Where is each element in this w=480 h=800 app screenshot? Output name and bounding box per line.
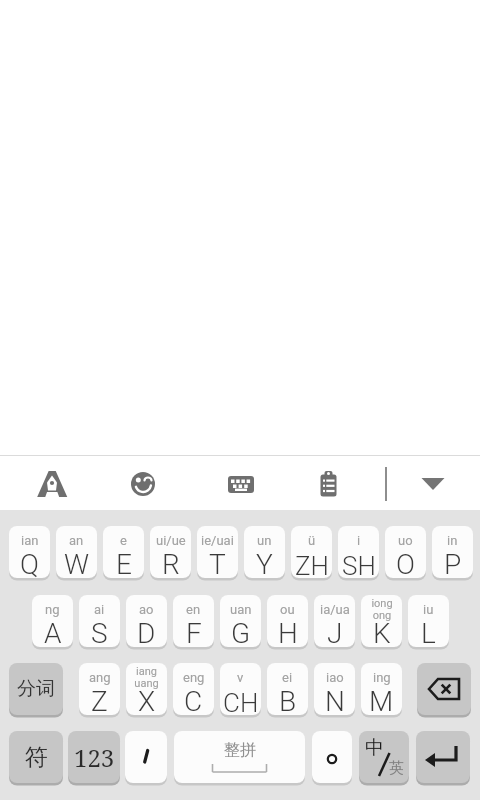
button[interactable]: ia/ua <box>314 595 355 647</box>
button[interactable]: A <box>30 462 74 506</box>
staticText: M <box>369 685 394 718</box>
button[interactable]: an <box>56 526 97 578</box>
staticText: T <box>209 548 226 581</box>
button[interactable]: ie/uai <box>197 526 238 578</box>
button[interactable] <box>411 462 455 506</box>
staticText: 中 <box>365 736 384 760</box>
staticText: G <box>231 617 251 650</box>
staticText: 分词 <box>17 677 55 701</box>
button[interactable] <box>121 462 165 506</box>
staticText: v <box>237 670 244 685</box>
button[interactable] <box>304 460 348 506</box>
staticText: ao <box>139 602 154 617</box>
button[interactable]: e <box>103 526 144 578</box>
button[interactable]: ai <box>79 595 120 647</box>
staticText: ian <box>21 533 39 548</box>
staticText: ia/ua <box>320 602 350 617</box>
staticText: X <box>138 685 156 718</box>
button[interactable]: ang <box>79 663 120 715</box>
button[interactable] <box>219 462 263 506</box>
staticText: eng <box>183 670 205 685</box>
staticText: J <box>327 617 343 650</box>
button[interactable] <box>312 731 352 783</box>
button[interactable]: uo <box>385 526 426 578</box>
staticText: ing <box>373 670 391 685</box>
staticText: W <box>64 548 90 581</box>
staticText: 符 <box>25 743 48 772</box>
button[interactable] <box>416 731 470 783</box>
staticText: 英 <box>389 759 404 778</box>
staticText: C <box>184 685 203 718</box>
staticText: uo <box>398 533 413 548</box>
button[interactable]: ian <box>9 526 50 578</box>
staticText: N <box>325 685 345 718</box>
staticText: H <box>278 617 298 650</box>
staticText: 整拼 <box>224 740 256 760</box>
button[interactable]: ü <box>291 526 332 578</box>
staticText: Y <box>256 548 273 581</box>
staticText: Q <box>20 548 39 581</box>
staticText: ZH <box>295 551 329 581</box>
button[interactable]: un <box>244 526 285 578</box>
staticText: K <box>373 617 391 650</box>
button[interactable]: 符 <box>9 731 63 783</box>
button[interactable]: eng <box>173 663 214 715</box>
staticText: R <box>162 548 180 581</box>
button[interactable]: ei <box>267 663 308 715</box>
staticText: ang <box>89 670 111 685</box>
staticText: ai <box>94 602 105 617</box>
staticText: ng <box>45 602 60 617</box>
staticText: L <box>421 617 436 650</box>
button[interactable]: ng <box>32 595 73 647</box>
staticText: S <box>91 617 108 650</box>
staticText: CH <box>223 688 259 718</box>
button[interactable]: 分词 <box>9 663 63 715</box>
button[interactable] <box>125 731 167 783</box>
button[interactable]: iu <box>408 595 449 647</box>
staticText: iao <box>326 670 344 685</box>
button[interactable] <box>417 663 471 715</box>
button[interactable]: iong ong <box>361 595 402 647</box>
staticText: ui/ue <box>156 533 186 548</box>
button[interactable]: 中 <box>359 731 409 783</box>
staticText: E <box>116 548 132 581</box>
staticText: O <box>396 548 415 581</box>
staticText: uan <box>230 602 252 617</box>
button[interactable]: v <box>220 663 261 715</box>
button[interactable]: 整拼 <box>174 731 305 783</box>
staticText: D <box>137 617 156 650</box>
staticText: iu <box>423 602 434 617</box>
staticText: A <box>37 464 68 506</box>
button[interactable]: uan <box>220 595 261 647</box>
staticText: e <box>120 533 127 548</box>
staticText: Z <box>91 685 108 718</box>
button[interactable]: i <box>338 526 379 578</box>
staticText: P <box>444 548 462 581</box>
staticText: iong ong <box>371 597 393 622</box>
button[interactable]: en <box>173 595 214 647</box>
button[interactable]: 123 <box>68 731 120 783</box>
button[interactable]: ao <box>126 595 167 647</box>
button[interactable]: in <box>432 526 473 578</box>
button[interactable]: iang uang <box>126 663 167 715</box>
staticText: ü <box>308 533 316 548</box>
staticText: iang uang <box>134 665 159 690</box>
staticText: i <box>357 533 361 548</box>
staticText: 123 <box>74 741 115 774</box>
staticText: in <box>447 533 458 548</box>
staticText: ie/uai <box>201 533 234 548</box>
staticText: ei <box>282 670 293 685</box>
button[interactable]: ing <box>361 663 402 715</box>
staticText: ou <box>280 602 295 617</box>
button[interactable]: iao <box>314 663 355 715</box>
staticText: en <box>186 602 201 617</box>
button[interactable]: ou <box>267 595 308 647</box>
staticText: B <box>279 685 297 718</box>
button[interactable]: ui/ue <box>150 526 191 578</box>
staticText: an <box>69 533 84 548</box>
staticText: SH <box>342 551 376 581</box>
staticText: F <box>186 617 202 650</box>
staticText: un <box>257 533 272 548</box>
staticText: A <box>44 617 62 650</box>
